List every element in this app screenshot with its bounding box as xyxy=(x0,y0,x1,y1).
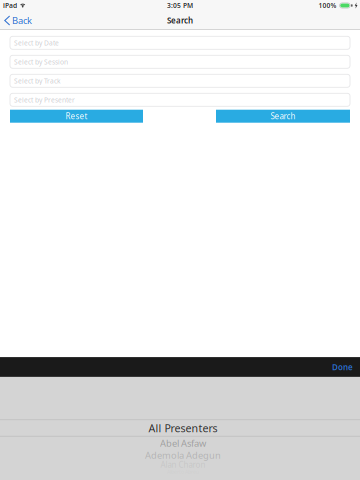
button[interactable]: Select by Date xyxy=(10,36,350,49)
staticText: 100% xyxy=(318,1,336,10)
button[interactable]: Select by Session xyxy=(10,55,350,68)
staticText: Abel Asfaw xyxy=(160,437,206,449)
staticText: Reset xyxy=(65,111,87,121)
staticText: Search xyxy=(270,111,295,121)
staticText: Select by Track xyxy=(14,76,61,85)
staticText: Select by Presenter xyxy=(14,95,75,104)
staticText: All Presenters xyxy=(148,421,217,435)
button[interactable]: Back xyxy=(0,11,37,30)
button[interactable]: Reset xyxy=(10,110,143,123)
staticText: Select by Session xyxy=(14,57,68,66)
staticText: iPad xyxy=(3,1,17,10)
button[interactable]: Select by Presenter xyxy=(10,93,350,106)
staticText: Select by Date xyxy=(14,38,59,47)
staticText: Back xyxy=(12,14,32,27)
staticText: Done xyxy=(332,362,353,372)
staticText: Ademola Adegun xyxy=(145,449,221,461)
button[interactable]: Search xyxy=(216,110,350,123)
staticText: Search xyxy=(167,15,193,26)
button[interactable]: Done xyxy=(325,357,360,377)
staticText: Alan Charon xyxy=(160,459,205,470)
button[interactable]: Select by Track xyxy=(10,74,350,87)
staticText: 3:05 PM xyxy=(167,1,193,10)
